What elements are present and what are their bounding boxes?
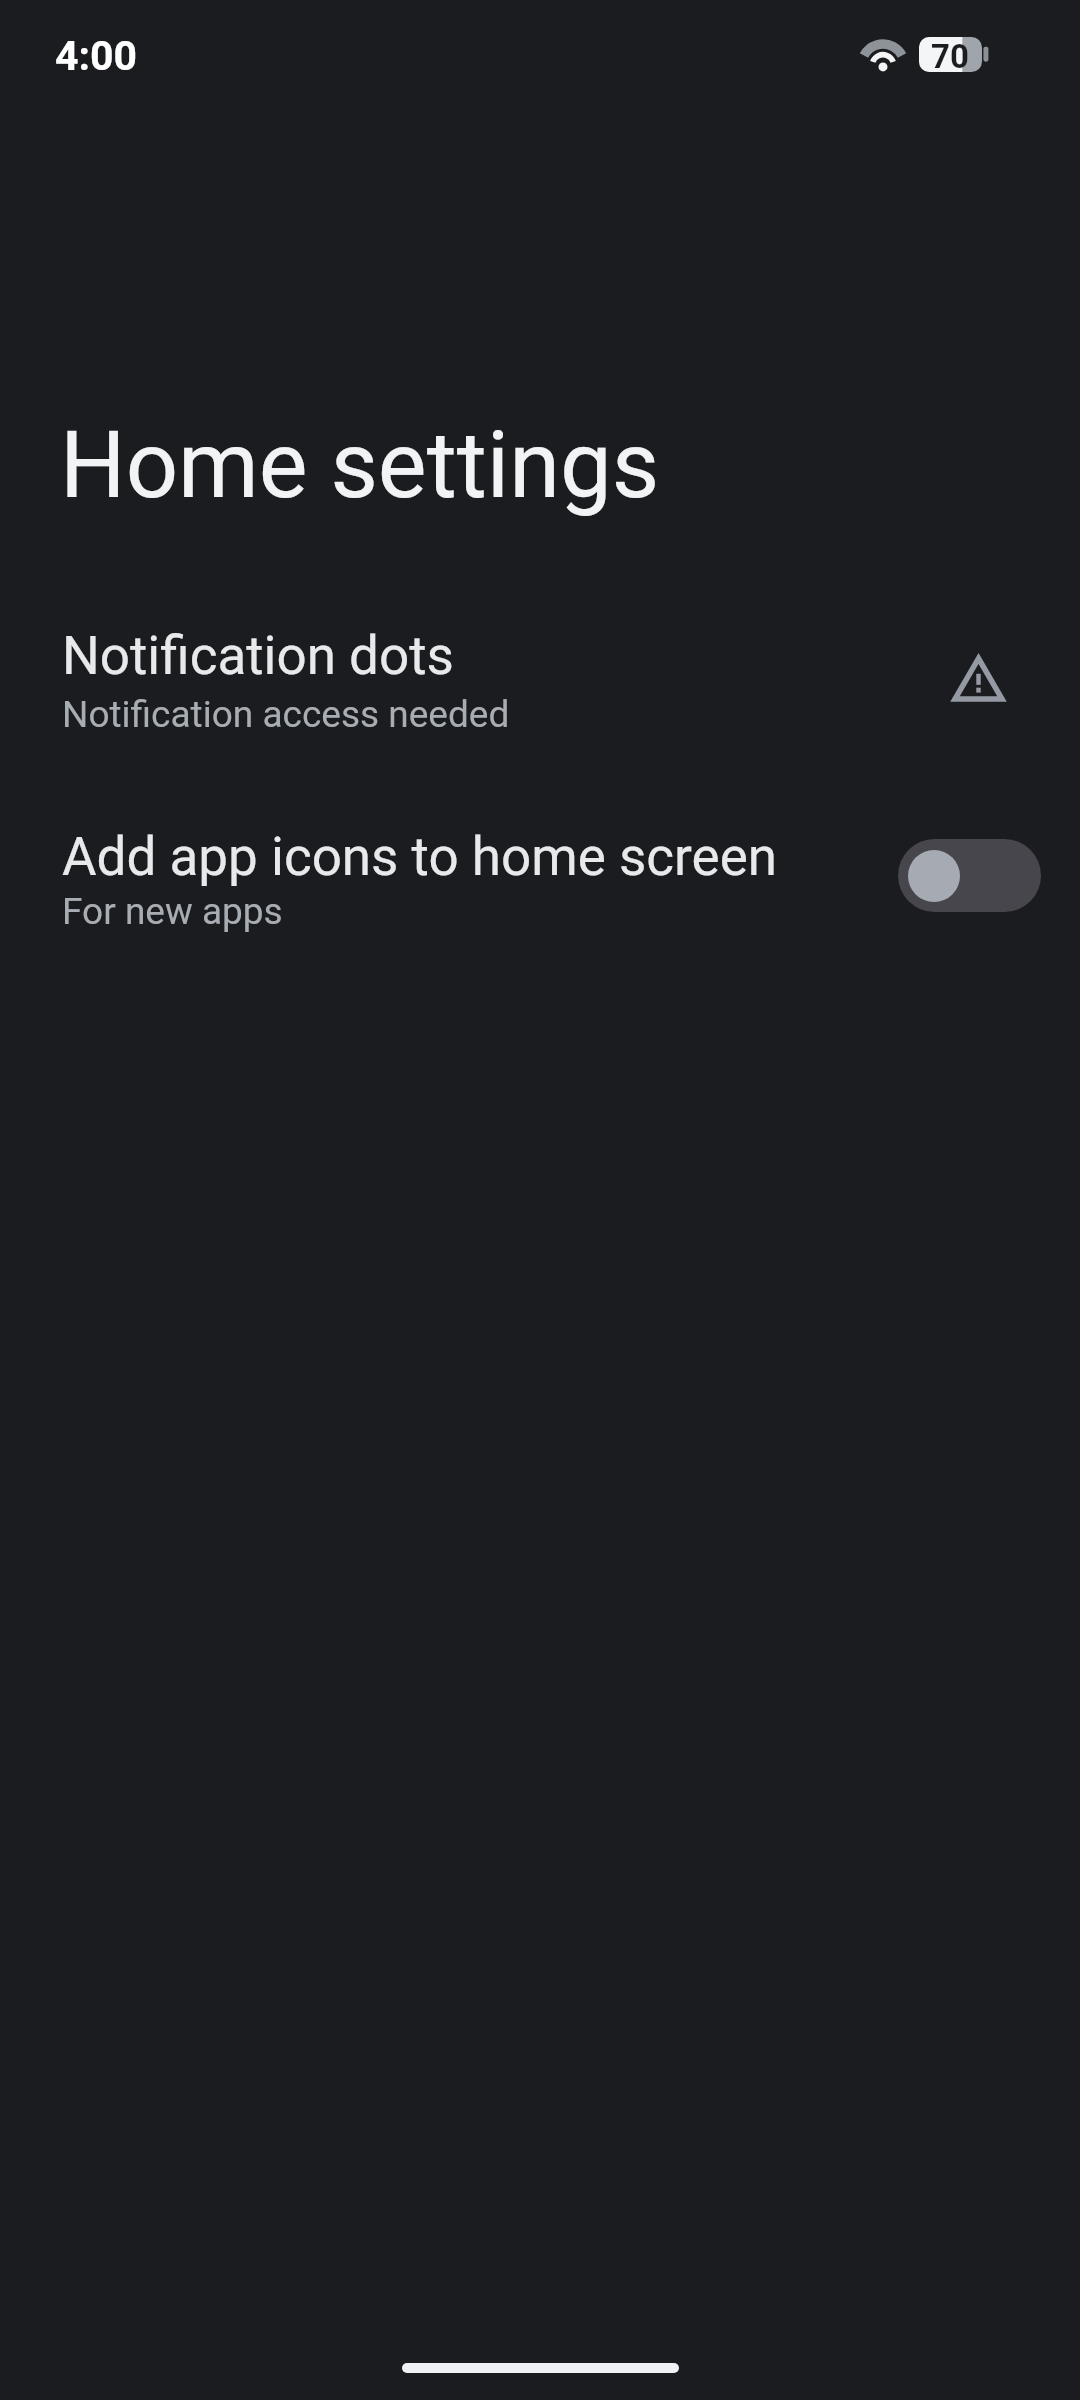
button[interactable]: Notification dots xyxy=(0,614,1080,774)
button[interactable]: Warning xyxy=(923,623,1033,733)
staticText: 4:00 xyxy=(55,32,138,80)
staticText: Notification dots xyxy=(62,625,454,687)
staticText: Add app icons to home screen xyxy=(62,826,778,888)
button[interactable]: Add app icons to home screen xyxy=(0,815,1080,975)
staticText: 70 xyxy=(931,37,969,72)
staticText: Home settings xyxy=(60,412,660,520)
button[interactable]: Add app icons to home screen xyxy=(898,839,1041,912)
staticText: For new apps xyxy=(62,890,283,933)
staticText: Notification access needed xyxy=(62,693,510,736)
